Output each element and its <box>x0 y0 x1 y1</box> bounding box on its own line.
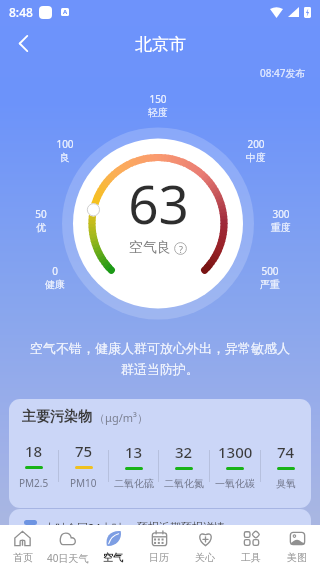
staticText: 300 <box>272 207 290 221</box>
button[interactable]: 首页 <box>0 525 45 568</box>
button[interactable]: 40日天气 <box>45 525 90 568</box>
button[interactable]: 空气 <box>90 525 136 568</box>
staticText: 空气良 <box>129 239 171 257</box>
staticText: 严重 <box>260 278 280 291</box>
staticText: 中度 <box>246 151 266 164</box>
staticText: 13 <box>125 442 143 462</box>
staticText: 优 <box>36 221 46 234</box>
button[interactable]: 小时全国24小时 <box>9 509 311 525</box>
staticText: 主要污染物 <box>22 408 92 426</box>
staticText: 40日天气 <box>47 551 89 565</box>
button[interactable]: 关心 <box>182 525 228 568</box>
staticText: ? <box>179 243 183 255</box>
staticText: 18 <box>25 441 43 461</box>
staticText: 臭氧 <box>276 477 296 490</box>
staticText: 空气 <box>103 551 123 564</box>
staticText: 74 <box>277 442 295 462</box>
staticText: 首页 <box>13 551 33 564</box>
staticText: 0 <box>52 264 58 278</box>
staticText: 空气不错，健康人群可放心外出，异常敏感人 群适当防护。 <box>22 340 298 378</box>
button[interactable]: Help <box>174 242 187 255</box>
staticText: 美图 <box>287 551 307 564</box>
staticText: 关心 <box>195 551 215 564</box>
staticText: 北京市 <box>135 34 186 55</box>
staticText: 健康 <box>45 278 65 291</box>
staticText: 500 <box>261 264 279 278</box>
button[interactable]: 美图 <box>274 525 320 568</box>
staticText: 二氧化氮 <box>164 477 204 490</box>
staticText: （μg/m³） <box>94 410 148 425</box>
button[interactable]: 日历 <box>136 525 182 568</box>
staticText: 100 <box>56 137 74 151</box>
staticText: A <box>63 8 68 16</box>
button[interactable]: 主要污染物 <box>9 399 311 508</box>
staticText: 一氧化碳 <box>215 477 255 490</box>
staticText: 重度 <box>271 221 291 234</box>
staticText: 日历 <box>149 551 169 564</box>
staticText: 32 <box>175 442 193 462</box>
staticText: 8:48 <box>9 4 33 20</box>
staticText: PM10 <box>70 476 97 490</box>
staticText: PM2.5 <box>19 476 49 490</box>
staticText: 1300 <box>218 442 253 462</box>
staticText: 50 <box>35 207 47 221</box>
button[interactable]: 工具 <box>228 525 274 568</box>
staticText: 二氧化硫 <box>114 477 154 490</box>
staticText: 轻度 <box>148 106 168 119</box>
staticText: 小时全国24小时 <box>44 520 123 525</box>
staticText: 08:47发布 <box>260 66 306 80</box>
staticText: 良 <box>60 151 70 164</box>
staticText: 150 <box>149 92 167 106</box>
staticText: 预报近期预报详情 <box>137 520 225 525</box>
staticText: 63 <box>128 167 189 239</box>
staticText: 工具 <box>241 551 261 564</box>
staticText: 75 <box>75 441 93 461</box>
staticText: 200 <box>247 137 265 151</box>
button[interactable]: Back <box>6 27 40 61</box>
